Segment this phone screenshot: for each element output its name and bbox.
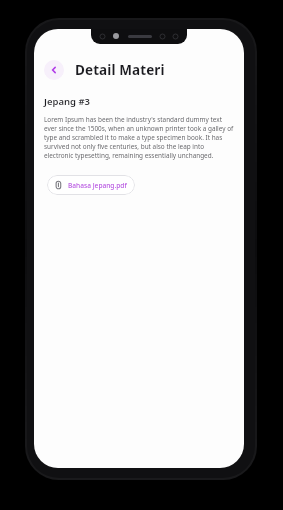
- button[interactable]: Bahasa Jepang.pdf: [47, 175, 135, 195]
- staticText: Detail Materi: [75, 61, 165, 79]
- staticText: Jepang #3: [44, 95, 91, 108]
- button[interactable]: Back: [44, 60, 64, 80]
- staticText: Bahasa Jepang.pdf: [68, 181, 127, 190]
- staticText: Lorem Ipsum has been the industry's stan…: [44, 115, 234, 160]
